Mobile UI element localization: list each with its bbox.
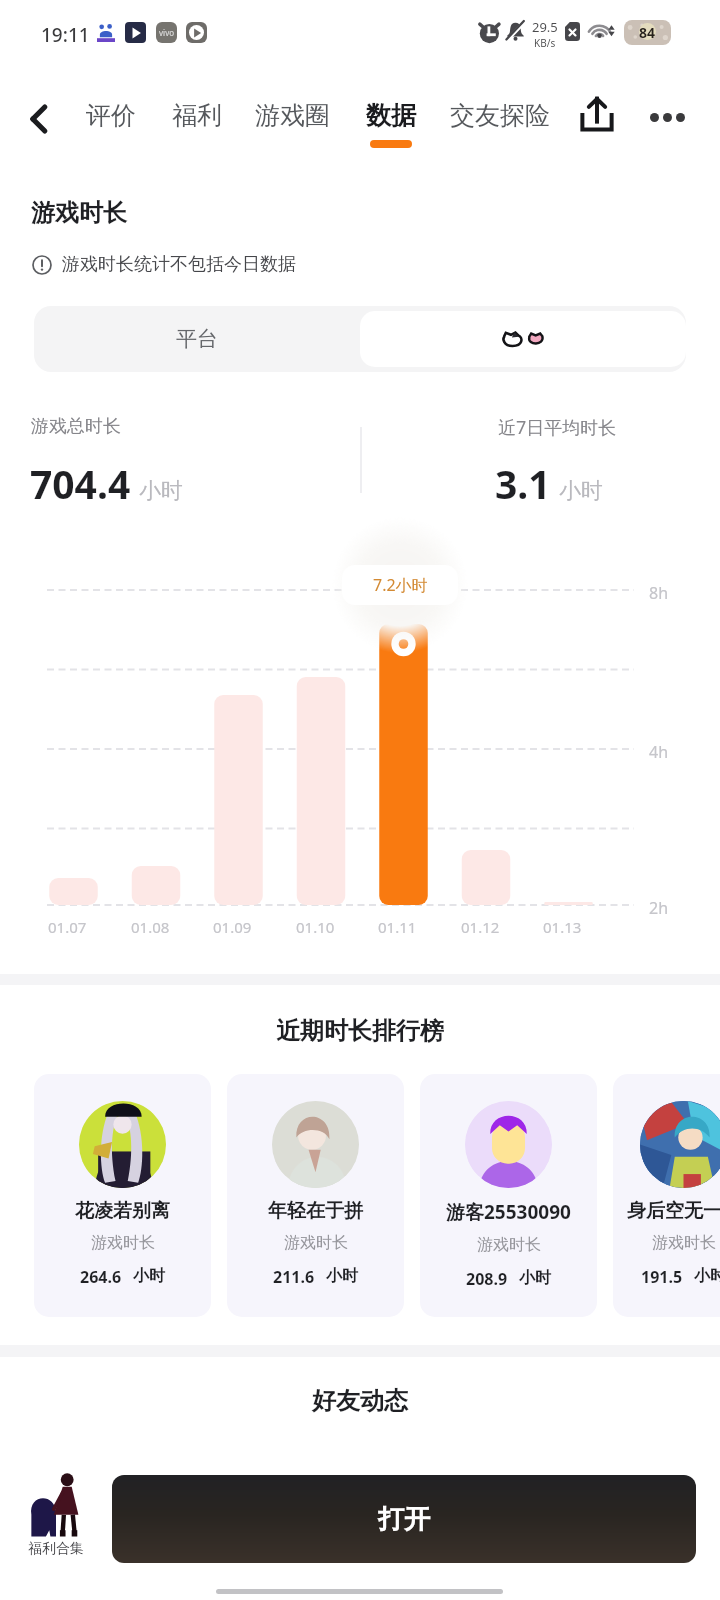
button[interactable]: 数据 bbox=[331, 100, 451, 170]
button[interactable]: 交友探险 bbox=[440, 100, 560, 170]
button[interactable]: 身后空无一人 bbox=[613, 1074, 720, 1317]
staticText: 2h bbox=[649, 897, 669, 919]
staticText: 游戏时长 bbox=[31, 198, 127, 228]
staticText: 01.12 bbox=[461, 917, 500, 937]
button[interactable]: 福利 bbox=[137, 100, 257, 170]
staticText: 平台 bbox=[176, 326, 218, 352]
staticText: 游戏时长 bbox=[652, 1233, 716, 1253]
staticText: 游戏时长 bbox=[284, 1233, 348, 1253]
staticText: 264.6 bbox=[80, 1266, 122, 1288]
staticText: 01.08 bbox=[131, 917, 170, 937]
staticText: 小时 bbox=[559, 477, 603, 505]
button[interactable]: 福利合集 bbox=[12, 1470, 100, 1558]
staticText: vivo bbox=[159, 27, 175, 38]
staticText: 小时 bbox=[139, 477, 183, 505]
staticText: 4h bbox=[649, 741, 669, 763]
staticText: 游戏总时长 bbox=[31, 415, 121, 438]
button[interactable]: 平台 bbox=[34, 306, 360, 372]
staticText: 交友探险 bbox=[450, 100, 550, 131]
staticText: 7.2小时 bbox=[373, 574, 428, 596]
button[interactable]: 游客25530090 bbox=[420, 1074, 597, 1317]
staticText: 208.9 bbox=[466, 1268, 508, 1290]
staticText: 01.11 bbox=[378, 917, 417, 937]
staticText: 191.5 bbox=[641, 1266, 683, 1288]
staticText: 年轻在于拼 bbox=[268, 1199, 363, 1223]
button[interactable]: More options bbox=[640, 90, 694, 144]
button[interactable]: 评价 bbox=[51, 100, 171, 170]
staticText: 小时 bbox=[694, 1266, 720, 1286]
staticText: 29.5 bbox=[532, 18, 558, 36]
button[interactable]: Share bbox=[570, 86, 624, 140]
button[interactable]: Game filter bbox=[360, 311, 686, 367]
staticText: 8h bbox=[649, 582, 669, 604]
staticText: 身后空无一人 bbox=[627, 1199, 720, 1223]
staticText: 小时 bbox=[133, 1266, 165, 1286]
staticText: 84 bbox=[639, 23, 656, 42]
staticText: 01.07 bbox=[48, 917, 87, 937]
staticText: 游戏时长统计不包括今日数据 bbox=[62, 253, 296, 276]
staticText: 花凌若别离 bbox=[75, 1199, 170, 1223]
staticText: 游戏时长 bbox=[477, 1235, 541, 1255]
staticText: 19:11 bbox=[41, 22, 90, 48]
staticText: 211.6 bbox=[273, 1266, 315, 1288]
staticText: 小时 bbox=[519, 1268, 551, 1288]
staticText: 近期时长排行榜 bbox=[276, 1016, 444, 1046]
staticText: 好友动态 bbox=[312, 1386, 408, 1416]
button[interactable]: 游戏圈 bbox=[232, 100, 352, 170]
staticText: 福利 bbox=[172, 100, 222, 131]
staticText: 游客25530090 bbox=[446, 1199, 571, 1225]
staticText: 近7日平均时长 bbox=[498, 415, 617, 440]
staticText: 01.13 bbox=[543, 917, 582, 937]
button[interactable]: 花凌若别离 bbox=[34, 1074, 211, 1317]
staticText: 数据 bbox=[366, 100, 416, 131]
staticText: 3.1 bbox=[495, 457, 551, 510]
staticText: KB/s bbox=[534, 36, 556, 50]
staticText: 游戏圈 bbox=[255, 100, 330, 131]
staticText: 小时 bbox=[326, 1266, 358, 1286]
staticText: 打开 bbox=[378, 1503, 430, 1536]
staticText: 游戏时长 bbox=[91, 1233, 155, 1253]
staticText: 704.4 bbox=[30, 457, 131, 510]
staticText: 福利合集 bbox=[28, 1540, 84, 1558]
button[interactable]: 年轻在于拼 bbox=[227, 1074, 404, 1317]
button[interactable]: Back bbox=[8, 87, 72, 151]
button[interactable]: 打开 bbox=[112, 1475, 696, 1563]
staticText: 01.09 bbox=[213, 917, 252, 937]
staticText: 评价 bbox=[86, 100, 136, 131]
staticText: 01.10 bbox=[296, 917, 335, 937]
